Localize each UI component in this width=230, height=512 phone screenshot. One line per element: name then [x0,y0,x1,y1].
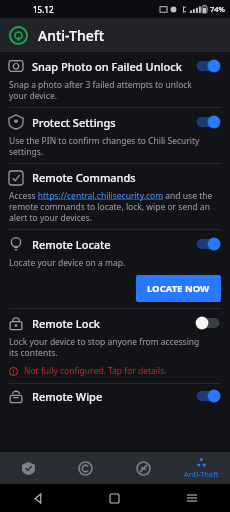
staticText: 74% [210,4,225,14]
button[interactable]: Toggle off [195,315,221,331]
staticText: Anti-Theft [184,469,219,479]
button[interactable]: Anti-Theft [172,452,230,484]
button[interactable]: Protection [0,452,57,484]
button[interactable]: Toggle on [195,388,221,404]
button[interactable]: Toggle on [195,236,221,252]
button[interactable]: Toggle on [195,58,221,74]
button[interactable]: LOCATE NOW [136,275,221,302]
staticText: LOCATE NOW [147,282,210,295]
staticText: Use the PIN to confirm changes to Chili … [9,135,203,157]
staticText: Lock your device to stop anyone from acc… [9,336,203,358]
staticText: Remote Locate [32,237,111,252]
button[interactable]: Back [0,484,76,512]
button[interactable]: Snap Photo on Failed Unlock [0,52,230,107]
button[interactable]: Remote Lock [0,309,230,383]
button[interactable]: Recents [153,484,230,512]
button[interactable]: Remote Commands [0,164,230,229]
staticText: Remote Commands [32,170,136,185]
staticText: Snap a photo after 3 failed attempts to … [9,79,203,101]
staticText: Remote Lock [32,316,100,331]
button[interactable]: Protect Settings [0,108,230,163]
button[interactable]: Home [76,484,153,512]
staticText: Protect Settings [32,115,116,130]
button[interactable]: Calls [114,452,172,484]
button[interactable]: Remote Wipe [0,384,230,408]
staticText: Access https://central.chilisecurity.com… [9,190,217,223]
button[interactable]: Toggle on [195,114,221,130]
staticText: Anti-Theft [38,26,105,45]
staticText: Snap Photo on Failed Unlock [32,59,182,74]
button[interactable]: Cleanup [57,452,114,484]
staticText: 15.12 [33,4,54,15]
staticText: Locate your device on a map. [9,257,126,269]
staticText: Not fully configured. Tap for details. [24,365,167,377]
staticText: Remote Wipe [32,389,103,404]
button[interactable]: Remote Locate [0,230,230,308]
